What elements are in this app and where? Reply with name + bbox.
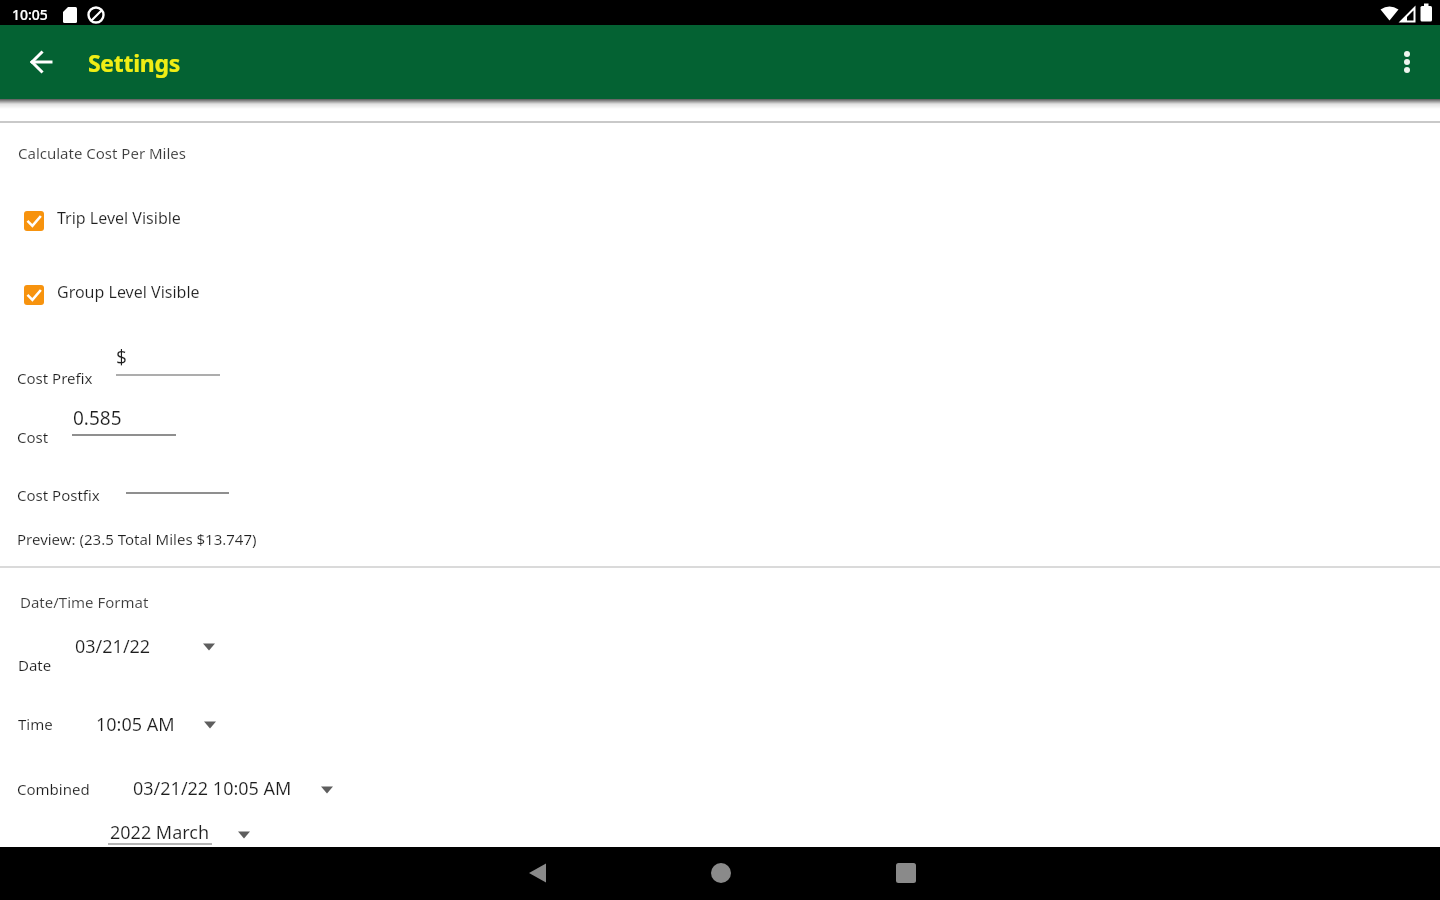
button[interactable] [1383, 38, 1431, 86]
button[interactable] [697, 849, 745, 897]
staticText: Group Level Visible [57, 281, 200, 303]
staticText: 0.585 [73, 405, 122, 431]
button[interactable] [116, 344, 220, 376]
button[interactable] [514, 849, 562, 897]
staticText: Cost Prefix [17, 368, 93, 388]
button[interactable] [72, 404, 176, 436]
button[interactable] [24, 211, 44, 231]
button[interactable] [882, 849, 930, 897]
button[interactable] [120, 774, 340, 802]
staticText: $ [116, 344, 127, 370]
button[interactable] [126, 462, 229, 494]
staticText: Cost Postfix [17, 485, 100, 505]
button[interactable] [24, 285, 44, 305]
staticText: 03/21/22 10:05 AM [133, 776, 292, 801]
staticText: 2022 March [110, 820, 210, 845]
button[interactable] [80, 708, 230, 736]
button[interactable] [60, 630, 230, 658]
button[interactable] [18, 38, 66, 86]
staticText: Time [18, 714, 53, 734]
staticText: Date [18, 655, 52, 675]
staticText: Trip Level Visible [57, 207, 181, 229]
staticText: 10:05 [12, 5, 48, 24]
staticText: Date/Time Format [20, 592, 149, 612]
staticText: 03/21/22 [75, 634, 151, 659]
staticText: Preview: (23.5 Total Miles $13.747) [17, 529, 257, 549]
staticText: Calculate Cost Per Miles [18, 143, 186, 163]
staticText: Combined [17, 779, 90, 799]
button[interactable] [100, 818, 260, 846]
staticText: Cost [17, 427, 49, 447]
staticText: 10:05 AM [96, 712, 175, 737]
staticText: Settings [88, 47, 180, 78]
